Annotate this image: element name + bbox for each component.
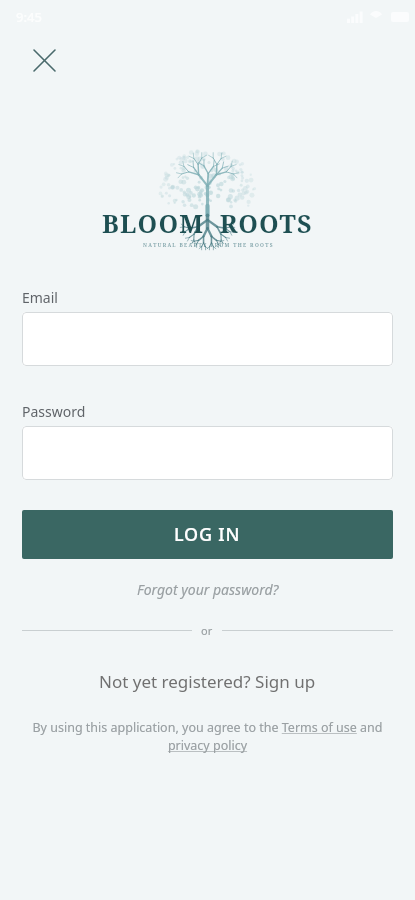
button[interactable]: LOG IN	[22, 510, 393, 559]
staticText: Forgot your password?	[137, 580, 279, 599]
staticText: BLOOM ROOTS	[102, 206, 313, 240]
staticText: LOG IN	[174, 522, 241, 547]
staticText: Not yet registered? Sign up	[99, 670, 316, 693]
staticText: 9:45	[16, 8, 42, 26]
button[interactable]	[22, 312, 393, 366]
staticText: Password	[22, 402, 86, 421]
staticText: or	[201, 623, 213, 638]
button[interactable]: By using this application, you agree to …	[22, 719, 393, 754]
staticText: N A T U R A L B E A U T Y F R O M T H E …	[143, 242, 273, 249]
staticText: Email	[22, 288, 58, 307]
button[interactable]: Close	[24, 40, 64, 80]
button[interactable]: Forgot your password?	[22, 580, 393, 599]
button[interactable]: Not yet registered? Sign up	[22, 670, 393, 693]
button[interactable]	[22, 426, 393, 480]
